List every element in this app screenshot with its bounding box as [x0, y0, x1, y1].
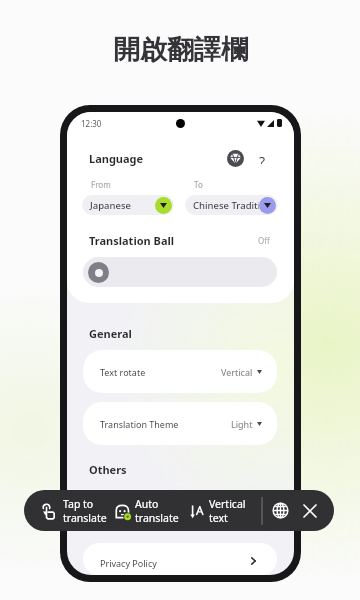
staticText: Vertical	[221, 366, 253, 378]
button[interactable]: Translation Theme	[83, 402, 277, 445]
button[interactable]	[83, 257, 277, 287]
button[interactable]: Close	[297, 498, 322, 523]
staticText: ?	[259, 152, 266, 165]
staticText: Text rotate	[100, 366, 146, 378]
staticText: From	[91, 179, 111, 190]
button[interactable]: Select language	[268, 498, 293, 523]
staticText: Translation Ball	[89, 233, 175, 248]
button[interactable]: Chinese Traditi	[185, 195, 278, 215]
staticText: 開啟翻譯欄	[113, 33, 248, 67]
staticText: 12:30	[81, 118, 102, 129]
button[interactable]: Auto	[114, 497, 179, 525]
staticText: Translation Theme	[100, 418, 179, 430]
staticText: Light	[231, 418, 253, 430]
button[interactable]: Help	[256, 152, 269, 165]
staticText: General	[89, 326, 132, 341]
staticText: Chinese Traditi	[193, 199, 259, 212]
staticText: translate	[135, 511, 179, 525]
button[interactable]: Premium	[227, 150, 244, 167]
button[interactable]: Text rotate	[83, 350, 277, 393]
staticText: Japanese	[90, 199, 155, 212]
staticText: Language	[89, 151, 144, 166]
staticText: Privacy Policy	[100, 557, 157, 569]
staticText: Auto	[135, 497, 159, 511]
button[interactable]: Privacy Policy	[83, 543, 277, 575]
staticText: translate	[63, 511, 107, 525]
staticText: Off	[258, 235, 270, 246]
staticText: Vertical	[209, 497, 246, 511]
staticText: Others	[89, 462, 127, 477]
button[interactable]: Vertical	[188, 497, 246, 525]
button[interactable]: Japanese	[82, 195, 174, 215]
staticText: Tap to	[63, 497, 94, 511]
staticText: text	[209, 511, 228, 525]
staticText: To	[194, 179, 203, 190]
button[interactable]: Tap to	[40, 497, 107, 525]
